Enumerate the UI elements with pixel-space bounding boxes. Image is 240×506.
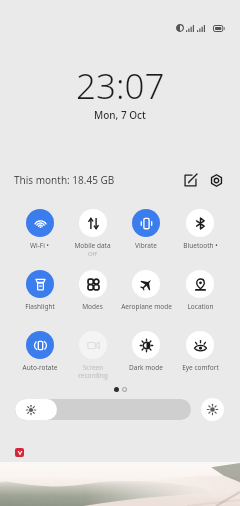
button[interactable]: Screen recording [66,331,119,392]
button[interactable]: Brightness [15,399,191,420]
staticText: Modes [82,302,103,311]
button[interactable]: Modes [66,270,119,331]
staticText: Location [187,302,214,311]
button[interactable]: Auto-rotate [13,331,66,392]
button[interactable]: Wi-Fi • [13,209,66,270]
staticText: Bluetooth • [183,241,218,250]
button[interactable]: Dark mode [119,331,173,392]
staticText: Eye comfort [182,363,219,372]
staticText: Wi-Fi • [30,241,49,250]
button[interactable]: Notification [15,448,24,457]
button[interactable]: Location [173,270,227,331]
button[interactable]: Mobile data [66,209,119,270]
staticText: Vibrate [135,241,157,250]
staticText: Off [88,250,97,258]
staticText: Mobile data [74,241,111,250]
staticText: Screen recording [78,363,108,380]
staticText: Aeroplane mode [121,302,172,311]
button[interactable]: Settings [206,170,226,190]
staticText: Dark mode [129,363,163,372]
staticText: 23:07 [76,62,165,110]
button[interactable]: Vibrate [119,209,173,270]
staticText: Mon, 7 Oct [94,108,146,122]
button[interactable]: Auto brightness [201,398,224,421]
button[interactable]: Eye comfort [173,331,227,392]
button[interactable]: Bluetooth • [173,209,227,270]
staticText: Flashlight [25,302,55,311]
staticText: Auto-rotate [22,363,58,372]
button[interactable]: Edit [180,170,200,190]
staticText: This month: 18.45 GB [14,173,115,187]
button[interactable]: Aeroplane mode [119,270,173,331]
button[interactable]: Flashlight [13,270,66,331]
